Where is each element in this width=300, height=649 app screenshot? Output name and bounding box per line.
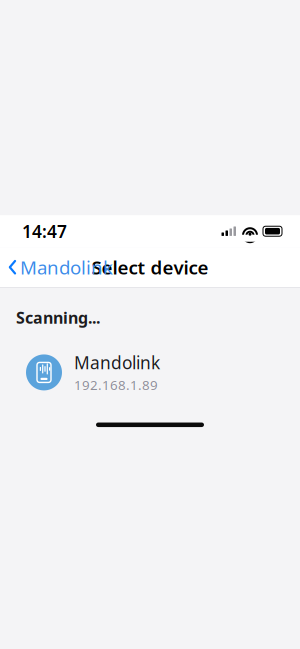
- staticText: 192.168.1.89: [74, 376, 158, 394]
- staticText: Mandolink: [74, 351, 160, 374]
- staticText: Scanning...: [16, 307, 100, 328]
- staticText: 14:47: [22, 220, 67, 243]
- button[interactable]: Mandolink: [0, 345, 300, 400]
- button[interactable]: Mandolink: [0, 249, 113, 286]
- staticText: Select device: [91, 255, 208, 280]
- staticText: Mandolink: [20, 255, 113, 280]
